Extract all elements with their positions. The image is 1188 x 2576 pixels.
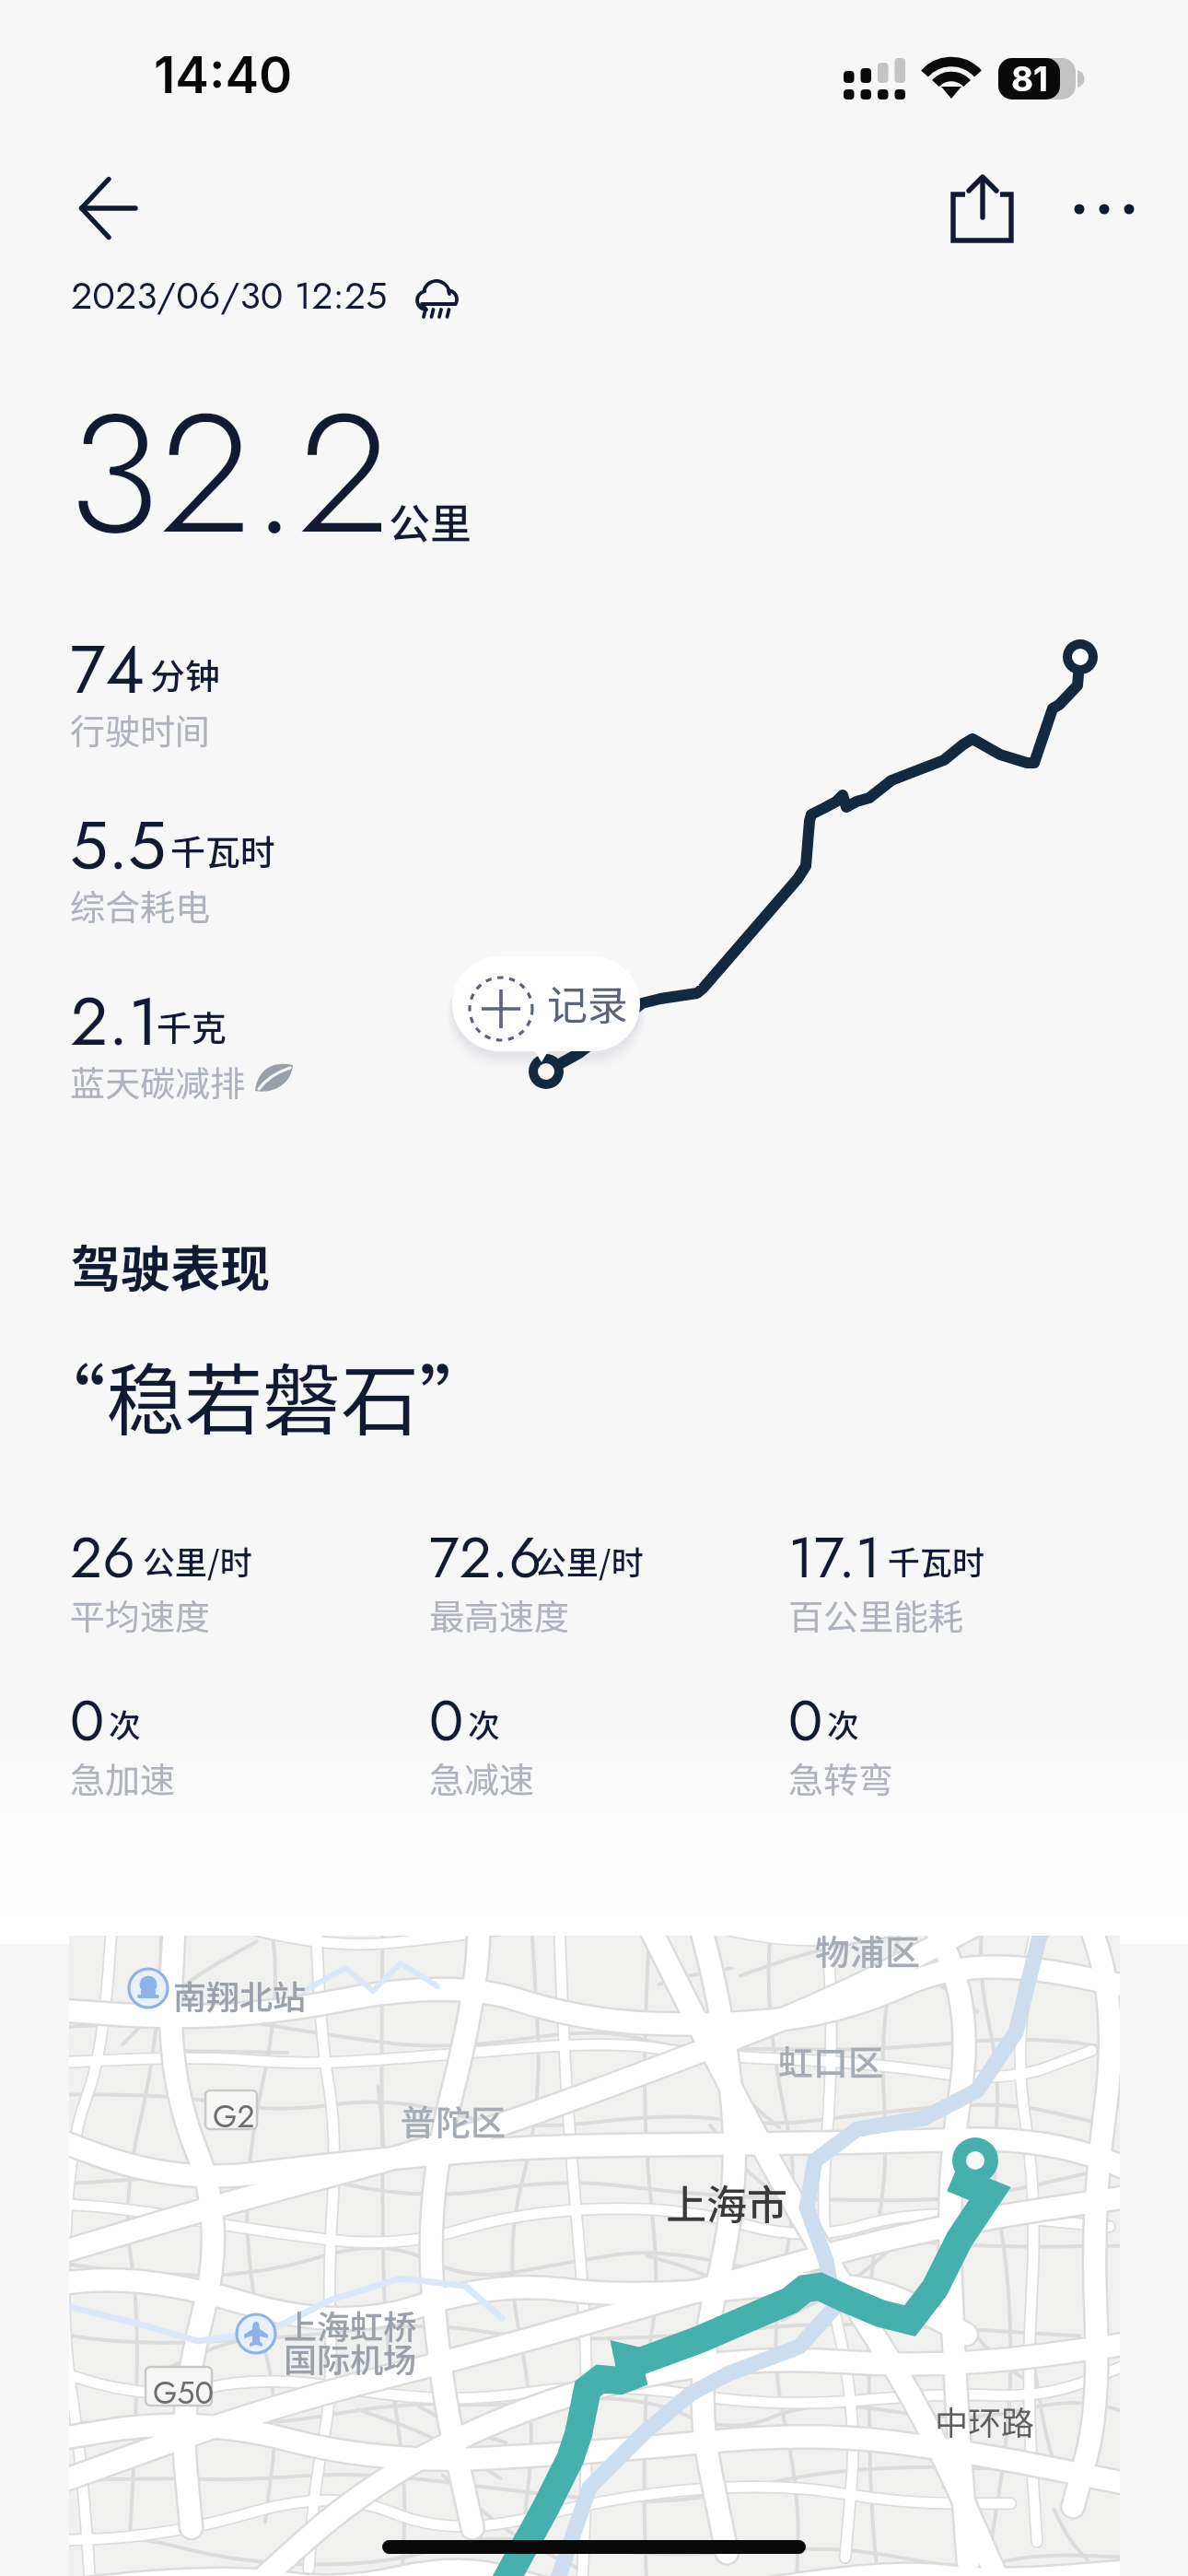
staticText: 千瓦时 (888, 1537, 985, 1584)
button[interactable]: Share (926, 147, 1040, 262)
staticText: 百公里能耗 (788, 1589, 964, 1640)
staticText: 公里/时 (534, 1537, 644, 1584)
button[interactable]: More options (1054, 168, 1155, 251)
staticText: 分钟 (150, 649, 221, 699)
staticText: 2023/06/30 12:25 (71, 268, 388, 322)
staticText: 17.1 (788, 1516, 881, 1599)
staticText: 千克 (157, 1001, 227, 1051)
staticText: 上海虹桥 (284, 2301, 417, 2348)
staticText: 72.6 (429, 1516, 542, 1599)
staticText: 南翔北站 (173, 1971, 307, 2019)
button[interactable]: 记录 (452, 956, 640, 1051)
button[interactable]: Back (52, 153, 162, 263)
staticText: 0 (788, 1680, 823, 1762)
staticText: 81 (1011, 58, 1049, 100)
staticText: 综合耗电 (70, 880, 211, 931)
staticText: 物浦区 (815, 1936, 921, 1975)
staticText: 次 (468, 1700, 501, 1747)
staticText: 国际机场 (284, 2334, 417, 2382)
staticText: 行驶时间 (70, 704, 211, 755)
staticText: 2.1 (70, 973, 159, 1070)
staticText: 急减速 (429, 1752, 535, 1803)
staticText: 0 (429, 1680, 464, 1762)
staticText: 普陀区 (401, 2095, 507, 2146)
staticText: 上海市 (666, 2172, 787, 2231)
staticText: 次 (827, 1700, 860, 1747)
staticText: G50 (153, 2371, 214, 2416)
staticText: 公里/时 (143, 1537, 252, 1584)
staticText: 驾驶表现 (71, 1229, 270, 1301)
staticText: 14:40 (154, 44, 293, 106)
staticText: 急加速 (70, 1752, 176, 1803)
staticText: 公里 (389, 491, 472, 551)
staticText: 中环路 (935, 2396, 1035, 2444)
staticText: G2 (213, 2094, 255, 2139)
staticText: 5.5 (70, 797, 167, 894)
staticText: 次 (109, 1700, 142, 1747)
staticText: 千瓦时 (170, 825, 276, 875)
staticText: 0 (70, 1680, 105, 1762)
staticText: 最高速度 (429, 1589, 570, 1640)
staticText: 平均速度 (70, 1589, 211, 1640)
staticText: “稳若磐石” (28, 1338, 498, 1451)
button[interactable]: Map (69, 1936, 1120, 2576)
staticText: 74 (70, 621, 145, 718)
staticText: 记录 (547, 973, 628, 1032)
staticText: 蓝天碳减排 (70, 1056, 246, 1107)
staticText: 虹口区 (778, 2035, 884, 2086)
staticText: 26 (70, 1516, 135, 1599)
staticText: 急转弯 (788, 1752, 894, 1803)
staticText: 32.2 (68, 353, 390, 594)
